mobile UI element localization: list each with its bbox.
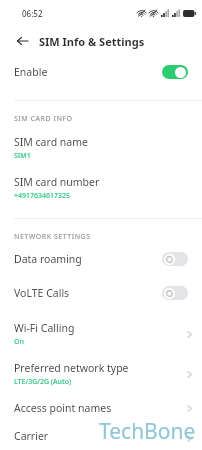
staticText: +4917634617325 [14,191,71,201]
button[interactable]: Carrier [0,418,202,450]
button[interactable]: Data roaming [0,242,202,276]
button[interactable]: Preferred network type [0,350,202,390]
staticText: SIM CARD INFO [14,114,73,124]
button[interactable]: Wi-Fi Calling [0,310,202,350]
button[interactable]: SIM card number [0,164,202,204]
staticText: SIM1 [14,151,31,161]
staticText: SIM card number [14,175,100,189]
staticText: Data roaming [14,252,82,266]
button[interactable]: VoLTE Calls [0,276,202,310]
button[interactable]: Back [12,31,32,51]
button[interactable]: Access point names [0,390,202,418]
staticText: Wi-Fi Calling [14,321,75,335]
staticText: Carrier [14,429,49,443]
button[interactable]: Enable [0,56,202,88]
staticText: NETWORK SETTINGS [14,232,91,242]
staticText: LTE/3G/2G (Auto) [14,377,72,387]
staticText: Access point names [14,401,112,415]
button[interactable]: SIM card name [0,124,202,164]
staticText: VoLTE Calls [14,286,70,300]
staticText: Preferred network type [14,361,129,375]
staticText: SIM Info & Settings [39,34,145,49]
staticText: On [14,337,24,347]
staticText: Enable [14,65,48,79]
staticText: 06:52 [22,8,43,19]
staticText: SIM card name [14,135,88,149]
staticText: TechBone [99,417,196,446]
